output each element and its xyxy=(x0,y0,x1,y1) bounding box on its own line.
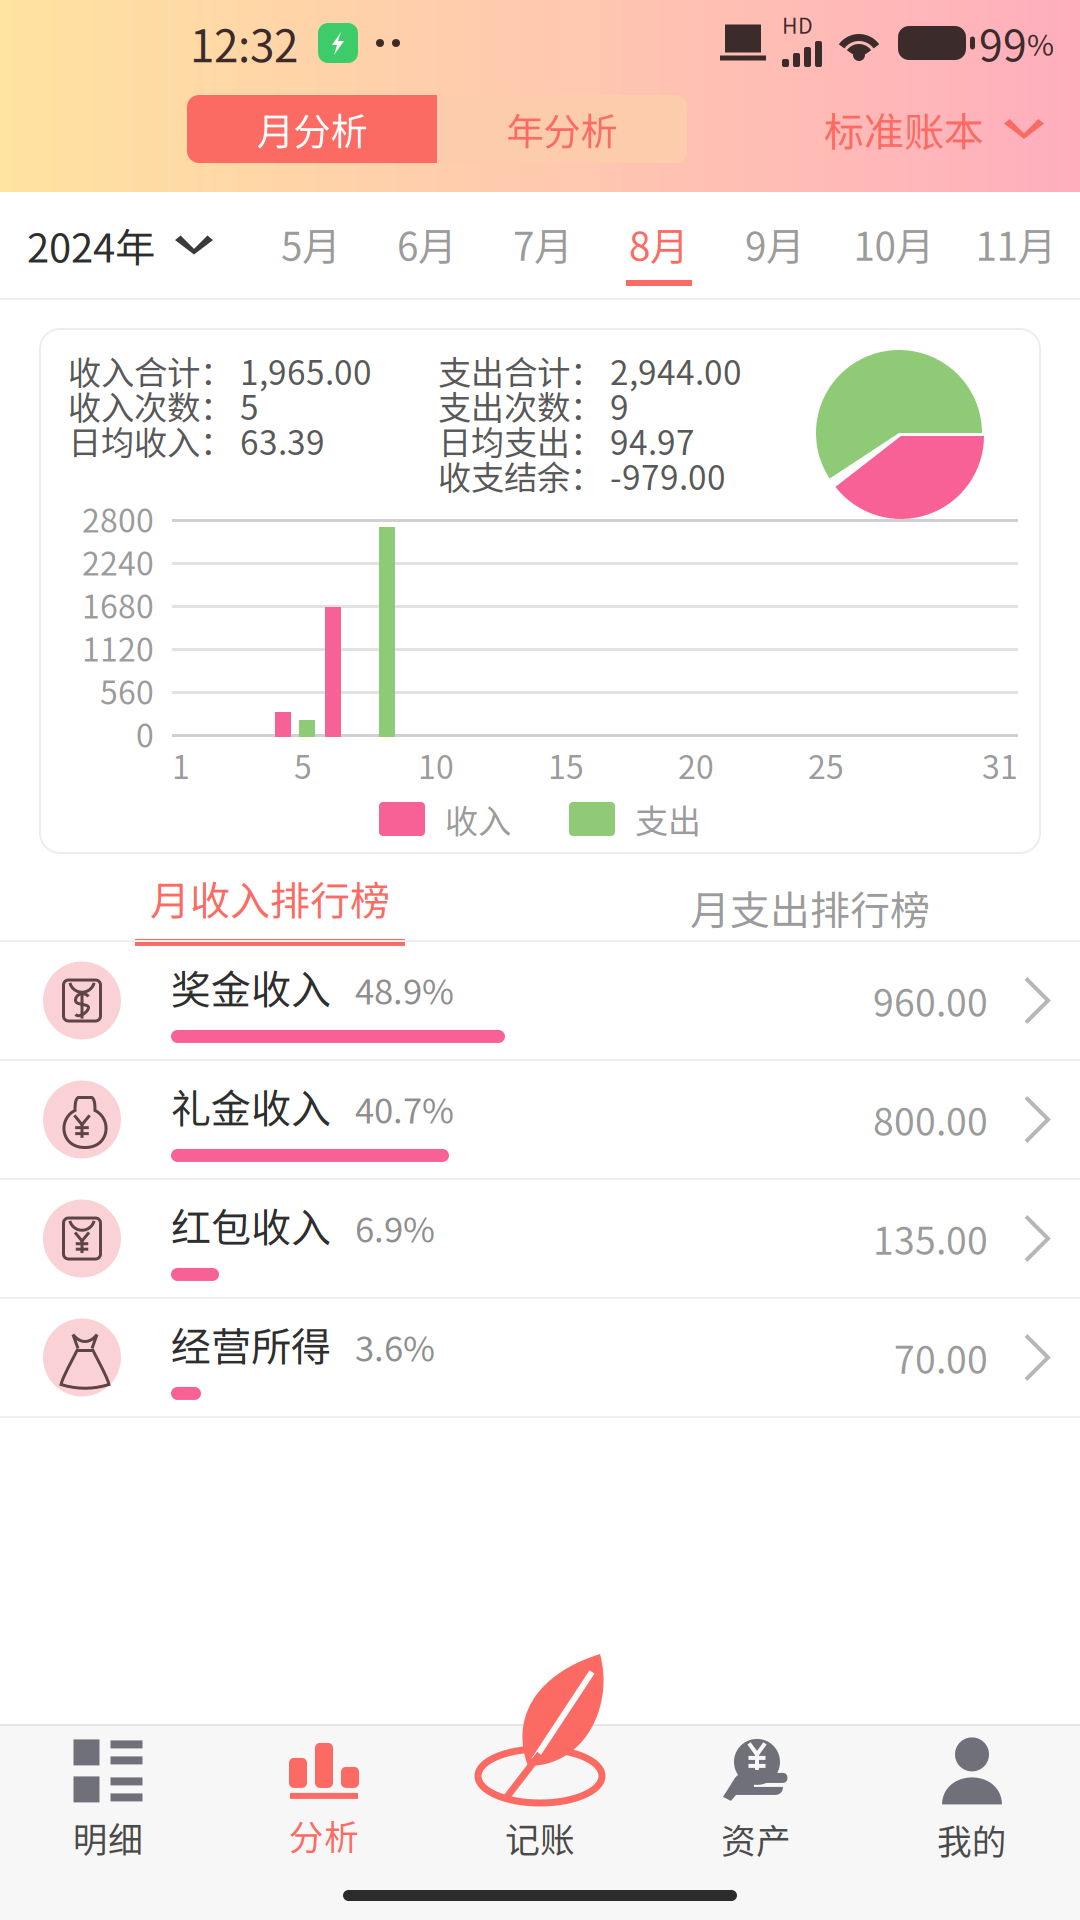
staticText: 560 xyxy=(100,667,154,714)
staticText: 5 xyxy=(294,742,312,788)
staticText: 支出 xyxy=(635,795,701,843)
staticText: 记账 xyxy=(505,1812,575,1863)
staticText: 11月 xyxy=(975,216,1056,272)
staticText: 1120 xyxy=(82,624,154,671)
button[interactable]: 明细 xyxy=(0,1726,216,1876)
button[interactable]: 11月 xyxy=(955,192,1077,298)
staticText: 分析 xyxy=(289,1810,359,1860)
button[interactable]: 月收入排行榜 xyxy=(0,871,540,940)
staticText: 48.9% xyxy=(355,964,454,1014)
staticText: 7月 xyxy=(513,216,573,272)
staticText: 99 xyxy=(979,12,1027,74)
button[interactable]: 红包收入 xyxy=(0,1180,1080,1299)
staticText: 经营所得 xyxy=(171,1315,331,1373)
button[interactable]: 标准账本 xyxy=(824,95,1044,163)
staticText: % xyxy=(1027,22,1054,64)
button[interactable]: 礼金收入 xyxy=(0,1061,1080,1180)
button[interactable]: 分析 xyxy=(216,1726,432,1876)
button[interactable]: 年分析 xyxy=(437,95,687,163)
staticText: 收入 xyxy=(445,795,511,843)
staticText: 960.00 xyxy=(873,973,988,1028)
staticText: 5月 xyxy=(281,216,341,272)
staticText: 月收入排行榜 xyxy=(150,869,390,927)
staticText: 6.9% xyxy=(355,1202,435,1252)
staticText: 日均收入： 63.39 xyxy=(68,416,325,465)
staticText: 资产 xyxy=(721,1814,791,1864)
staticText: 月分析 xyxy=(256,102,367,156)
staticText: 礼金收入 xyxy=(171,1077,331,1135)
staticText: 月支出排行榜 xyxy=(690,878,930,936)
staticText: 31 xyxy=(982,742,1018,788)
staticText: 日均支出： 94.97 xyxy=(438,416,695,465)
staticText: 年分析 xyxy=(506,102,617,156)
staticText: 收支结余： -979.00 xyxy=(438,451,726,500)
button[interactable]: 奖金收入 xyxy=(0,942,1080,1061)
staticText: 明细 xyxy=(73,1812,143,1863)
staticText: 我的 xyxy=(937,1814,1007,1865)
staticText: 8月 xyxy=(629,216,689,272)
staticText: 10 xyxy=(418,742,454,788)
staticText: 红包收入 xyxy=(171,1196,331,1254)
staticText: 3.6% xyxy=(355,1321,435,1371)
staticText: 2240 xyxy=(82,538,154,585)
button[interactable]: 9月 xyxy=(717,192,833,298)
button[interactable]: 经营所得 xyxy=(0,1299,1080,1418)
button[interactable]: 6月 xyxy=(369,192,485,298)
staticText: 800.00 xyxy=(873,1092,988,1147)
staticText: 6月 xyxy=(397,216,457,272)
staticText: 12:32 xyxy=(190,11,298,75)
button[interactable]: 月分析 xyxy=(187,95,437,163)
staticText: 25 xyxy=(808,742,844,788)
button[interactable]: 7月 xyxy=(485,192,601,298)
staticText: 收入次数： 5 xyxy=(68,381,259,430)
button[interactable]: 5月 xyxy=(253,192,369,298)
staticText: 1 xyxy=(172,742,190,788)
staticText: 2800 xyxy=(82,495,154,542)
button[interactable]: 资产 xyxy=(648,1726,864,1876)
button[interactable]: 记账 xyxy=(432,1726,648,1876)
button[interactable]: 月支出排行榜 xyxy=(540,871,1080,940)
staticText: 135.00 xyxy=(873,1211,988,1266)
staticText: 收入合计： 1,965.00 xyxy=(68,346,372,395)
staticText: 支出合计： 2,944.00 xyxy=(438,346,742,395)
button[interactable]: 我的 xyxy=(864,1726,1080,1876)
staticText: 20 xyxy=(678,742,714,788)
staticText: 支出次数： 9 xyxy=(438,381,629,430)
staticText: 40.7% xyxy=(355,1083,454,1133)
staticText: 2024年 xyxy=(27,216,155,274)
button[interactable]: 8月 xyxy=(601,192,717,298)
button[interactable]: 2024年 xyxy=(0,192,253,298)
staticText: 10月 xyxy=(853,216,934,272)
staticText: 15 xyxy=(548,742,584,788)
staticText: 标准账本 xyxy=(824,100,984,158)
staticText: 70.00 xyxy=(894,1330,988,1385)
button[interactable]: 10月 xyxy=(833,192,955,298)
staticText: HD xyxy=(782,9,813,40)
staticText: 9月 xyxy=(745,216,805,272)
staticText: 奖金收入 xyxy=(171,958,331,1016)
staticText: 1680 xyxy=(82,581,154,628)
staticText: 0 xyxy=(136,710,154,757)
